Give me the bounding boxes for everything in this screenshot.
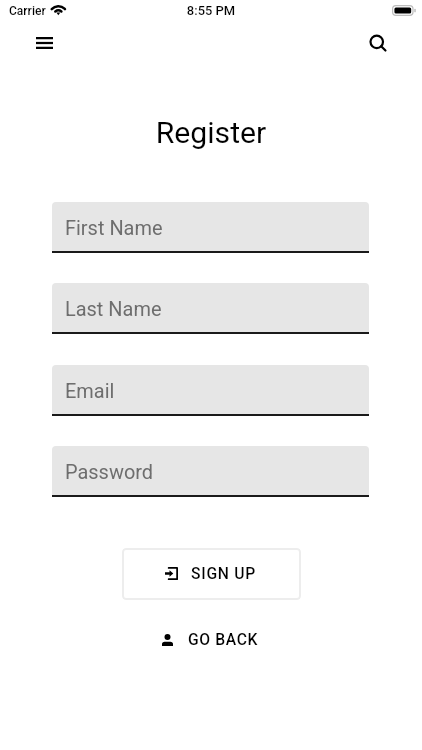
button[interactable]: Email (52, 365, 369, 416)
staticText: Email (65, 379, 115, 402)
button[interactable]: SIGN UP (122, 548, 301, 600)
staticText: Register (0, 115, 422, 150)
staticText: 8:55 PM (0, 3, 422, 18)
staticText: SIGN UP (191, 564, 256, 582)
staticText: Carrier (9, 4, 46, 18)
staticText: Last Name (65, 297, 162, 320)
button[interactable]: Menu (22, 21, 66, 65)
button[interactable]: GO BACK (152, 624, 267, 654)
staticText: First Name (65, 216, 163, 239)
button[interactable]: Search (355, 20, 399, 64)
staticText: Password (65, 460, 154, 483)
button[interactable]: Password (52, 446, 369, 497)
button[interactable]: First Name (52, 202, 369, 253)
button[interactable]: Last Name (52, 283, 369, 334)
staticText: GO BACK (188, 630, 259, 648)
